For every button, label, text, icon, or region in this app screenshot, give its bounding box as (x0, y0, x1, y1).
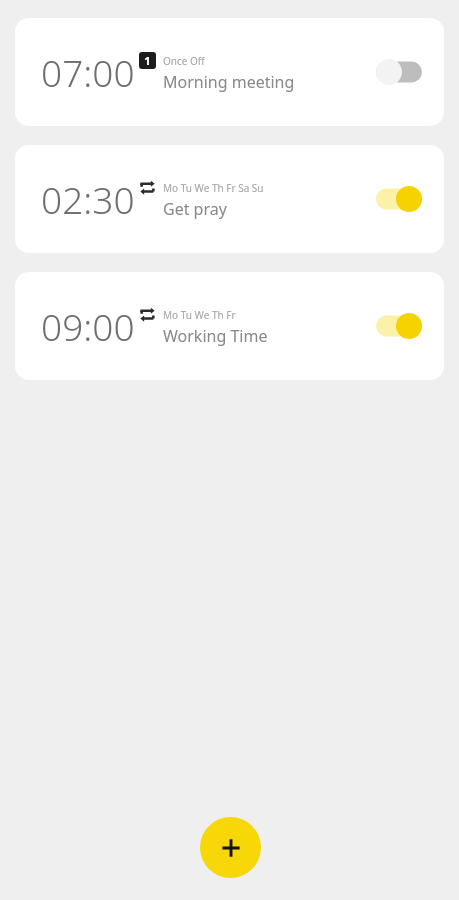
staticText: 07:00 (41, 47, 135, 97)
staticText: Mo Tu We Th Fr Sa Su (163, 181, 264, 195)
button[interactable]: 09:00 (15, 272, 444, 380)
button[interactable]: Alarm on (376, 313, 422, 339)
staticText: Get pray (163, 198, 227, 220)
button[interactable]: Alarm off (376, 59, 422, 85)
button[interactable]: Alarm on (376, 186, 422, 212)
staticText: Once Off (163, 54, 205, 68)
staticText: 02:30 (41, 174, 135, 224)
staticText: 09:00 (41, 301, 135, 351)
staticText: Mo Tu We Th Fr (163, 308, 236, 322)
staticText: Morning meeting (163, 71, 295, 93)
staticText: Working Time (163, 325, 268, 347)
staticText: 1 (144, 53, 151, 68)
button[interactable]: 02:30 (15, 145, 444, 253)
button[interactable]: 07:00 (15, 18, 444, 126)
button[interactable]: Add alarm (200, 817, 261, 878)
